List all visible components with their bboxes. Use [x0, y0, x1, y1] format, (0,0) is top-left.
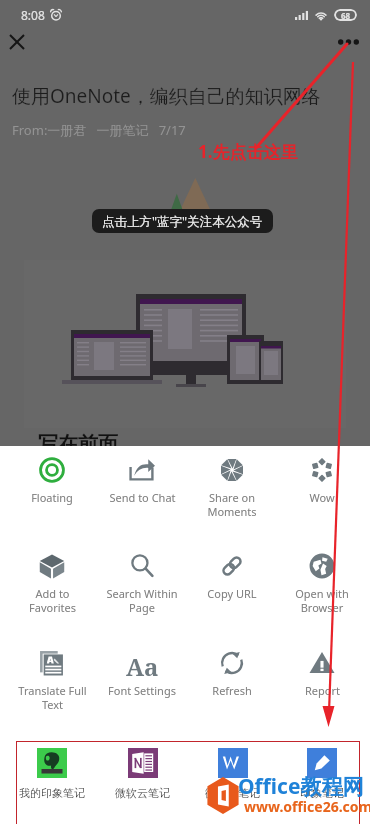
staticText: 写在前面: [38, 432, 118, 457]
staticText: Report: [305, 683, 340, 698]
staticText: 微软云笔记: [205, 786, 260, 800]
button[interactable]: Share on Moments: [189, 457, 275, 525]
staticText: Floating: [31, 490, 73, 505]
staticText: 我的印象笔记: [19, 786, 85, 800]
staticText: 印象笔记: [300, 786, 344, 800]
staticText: 1.先点击这里: [198, 140, 298, 163]
button[interactable]: 印象笔记: [279, 748, 365, 810]
button[interactable]: 微软云笔记: [99, 748, 185, 810]
button[interactable]: Aa: [99, 650, 185, 718]
staticText: Open with Browser: [295, 586, 349, 615]
button[interactable]: Add to Favorites: [9, 553, 95, 621]
button[interactable]: Send to Chat: [99, 457, 185, 525]
staticText: 点击上方"蓝字"关注本公众号: [102, 213, 263, 230]
staticText: Add to Favorites: [29, 586, 76, 615]
button[interactable]: Close: [3, 28, 31, 56]
button[interactable]: More options: [332, 26, 364, 58]
button[interactable]: Copy URL: [189, 553, 275, 621]
staticText: Send to Chat: [109, 490, 176, 505]
button[interactable]: Refresh: [189, 650, 275, 718]
staticText: www.office26.com: [244, 797, 370, 816]
staticText: Refresh: [212, 683, 252, 698]
staticText: From:一册君 一册笔记 7/17: [12, 121, 186, 139]
staticText: Share on Moments: [207, 490, 257, 519]
staticText: Aa: [126, 650, 159, 676]
staticText: Copy URL: [207, 586, 257, 601]
staticText: Font Settings: [108, 683, 176, 698]
staticText: Translate Full Text: [18, 683, 87, 712]
staticText: Wow: [309, 490, 335, 505]
staticText: 微软云笔记: [115, 786, 170, 800]
staticText: 8:08: [21, 7, 45, 23]
staticText: Office教程网: [238, 772, 364, 801]
button[interactable]: Translate Full Text: [9, 650, 95, 718]
button[interactable]: Wow: [279, 457, 365, 525]
button[interactable]: Search Within Page: [99, 553, 185, 621]
button[interactable]: 我的印象笔记: [9, 748, 95, 810]
button[interactable]: Open with Browser: [279, 553, 365, 621]
staticText: Search Within Page: [106, 586, 178, 615]
staticText: 使用OneNote，编织自己的知识网络: [12, 83, 321, 109]
button[interactable]: 微软云笔记: [189, 748, 275, 810]
staticText: 68: [341, 10, 351, 21]
button[interactable]: Floating: [9, 457, 95, 525]
button[interactable]: Report: [279, 650, 365, 718]
